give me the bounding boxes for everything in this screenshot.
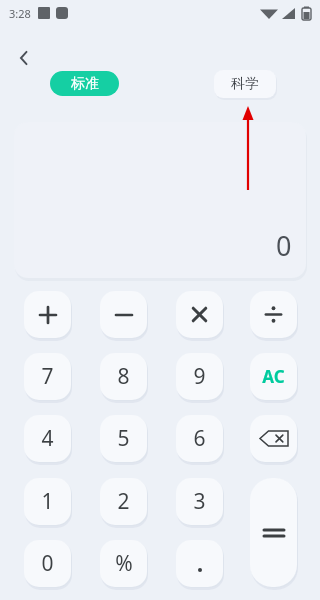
staticText: 标准 <box>71 75 99 93</box>
button[interactable]: 1 <box>24 478 71 525</box>
button[interactable]: Backspace <box>250 415 297 462</box>
staticText: 0 <box>41 549 54 578</box>
button[interactable]: 标准 <box>50 71 119 96</box>
staticText: 3:28 <box>9 6 31 21</box>
button[interactable]: Divide <box>250 291 297 338</box>
button[interactable]: Plus <box>24 291 71 338</box>
button[interactable]: AC <box>250 353 297 400</box>
staticText: 0 <box>276 227 292 264</box>
button[interactable]: 7 <box>24 353 71 400</box>
button[interactable]: 4 <box>24 415 71 462</box>
staticText: 3 <box>193 487 206 516</box>
staticText: 6 <box>193 424 206 453</box>
staticText: 1 <box>41 487 54 516</box>
button[interactable]: 3 <box>176 478 223 525</box>
button[interactable]: 5 <box>100 415 147 462</box>
button[interactable]: % <box>100 540 147 587</box>
staticText: 5 <box>117 424 130 453</box>
button[interactable]: Multiply <box>176 291 223 338</box>
staticText: 4 <box>41 424 54 453</box>
button[interactable]: 科学 <box>214 70 276 98</box>
staticText: 7 <box>41 362 54 391</box>
button[interactable]: 8 <box>100 353 147 400</box>
staticText: 2 <box>117 487 130 516</box>
button[interactable]: Minus <box>100 291 147 338</box>
button[interactable]: 2 <box>100 478 147 525</box>
button[interactable]: 9 <box>176 353 223 400</box>
staticText: 8 <box>117 362 130 391</box>
button[interactable]: Decimal point <box>176 540 223 587</box>
staticText: % <box>115 549 133 578</box>
staticText: 9 <box>193 362 206 391</box>
staticText: 科学 <box>231 75 259 93</box>
staticText: AC <box>262 365 285 388</box>
button[interactable]: Equals <box>250 478 297 587</box>
button[interactable]: Back <box>8 42 40 74</box>
button[interactable]: 0 <box>24 540 71 587</box>
button[interactable]: 6 <box>176 415 223 462</box>
